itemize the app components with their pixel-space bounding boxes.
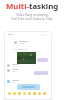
button[interactable] bbox=[7, 69, 18, 72]
staticText: Multi- bbox=[6, 1, 29, 12]
staticText: Video Song on playing bbox=[0, 13, 64, 17]
button[interactable] bbox=[7, 64, 19, 67]
button[interactable] bbox=[7, 80, 19, 83]
staticText: tasking bbox=[29, 1, 59, 12]
staticText: Feel Free to do Game or Chat bbox=[0, 17, 64, 21]
button[interactable] bbox=[17, 52, 36, 64]
button[interactable] bbox=[14, 41, 28, 44]
button[interactable]: More options bbox=[40, 34, 46, 36]
